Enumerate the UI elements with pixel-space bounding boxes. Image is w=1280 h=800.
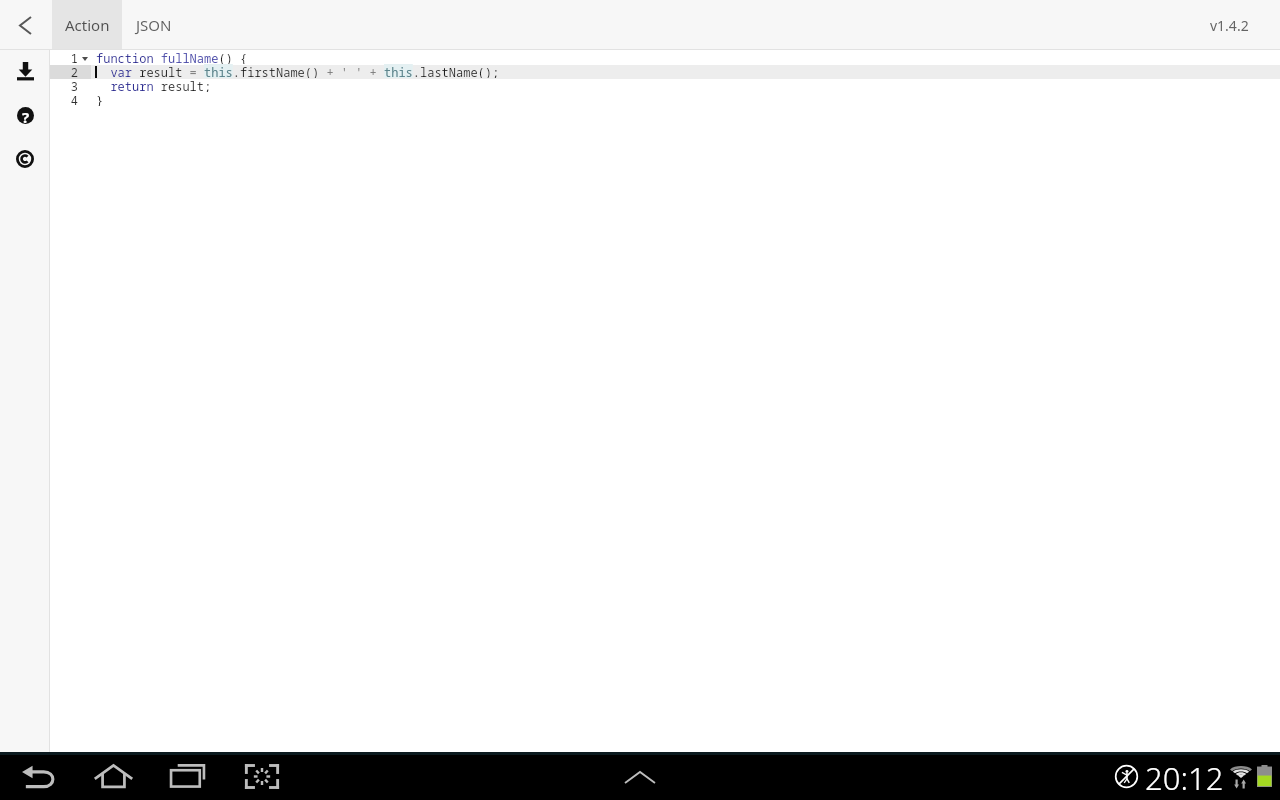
staticText: 4	[70, 92, 78, 106]
staticText: 2	[70, 64, 78, 78]
button[interactable]: Action	[52, 0, 122, 50]
button[interactable]: Copyright	[0, 137, 50, 181]
button[interactable]: Back	[1, 752, 75, 800]
button[interactable]: Show keyboard	[617, 753, 663, 800]
staticText: }	[96, 92, 104, 106]
button[interactable]: Home	[76, 752, 150, 800]
staticText: 3	[70, 78, 78, 92]
staticText: v1.4.2	[1210, 16, 1249, 35]
button[interactable]: Download	[0, 49, 50, 93]
staticText: Action	[65, 15, 110, 35]
button[interactable]: Code editor	[50, 50, 1280, 752]
button[interactable]: Recents	[150, 752, 224, 800]
button[interactable]: JSON	[122, 0, 186, 50]
staticText: ?	[22, 107, 30, 124]
staticText: JSON	[136, 15, 172, 35]
staticText: function fullName() {	[96, 50, 248, 64]
button[interactable]: Back	[0, 0, 50, 50]
staticText: 20:12	[1145, 757, 1224, 799]
button[interactable]: Help	[0, 93, 50, 137]
staticText: 1	[70, 50, 78, 64]
staticText: return result;	[96, 78, 212, 92]
staticText: var result = this.firstName() + ' ' + th…	[96, 64, 500, 78]
button[interactable]: Screenshot	[225, 752, 299, 800]
